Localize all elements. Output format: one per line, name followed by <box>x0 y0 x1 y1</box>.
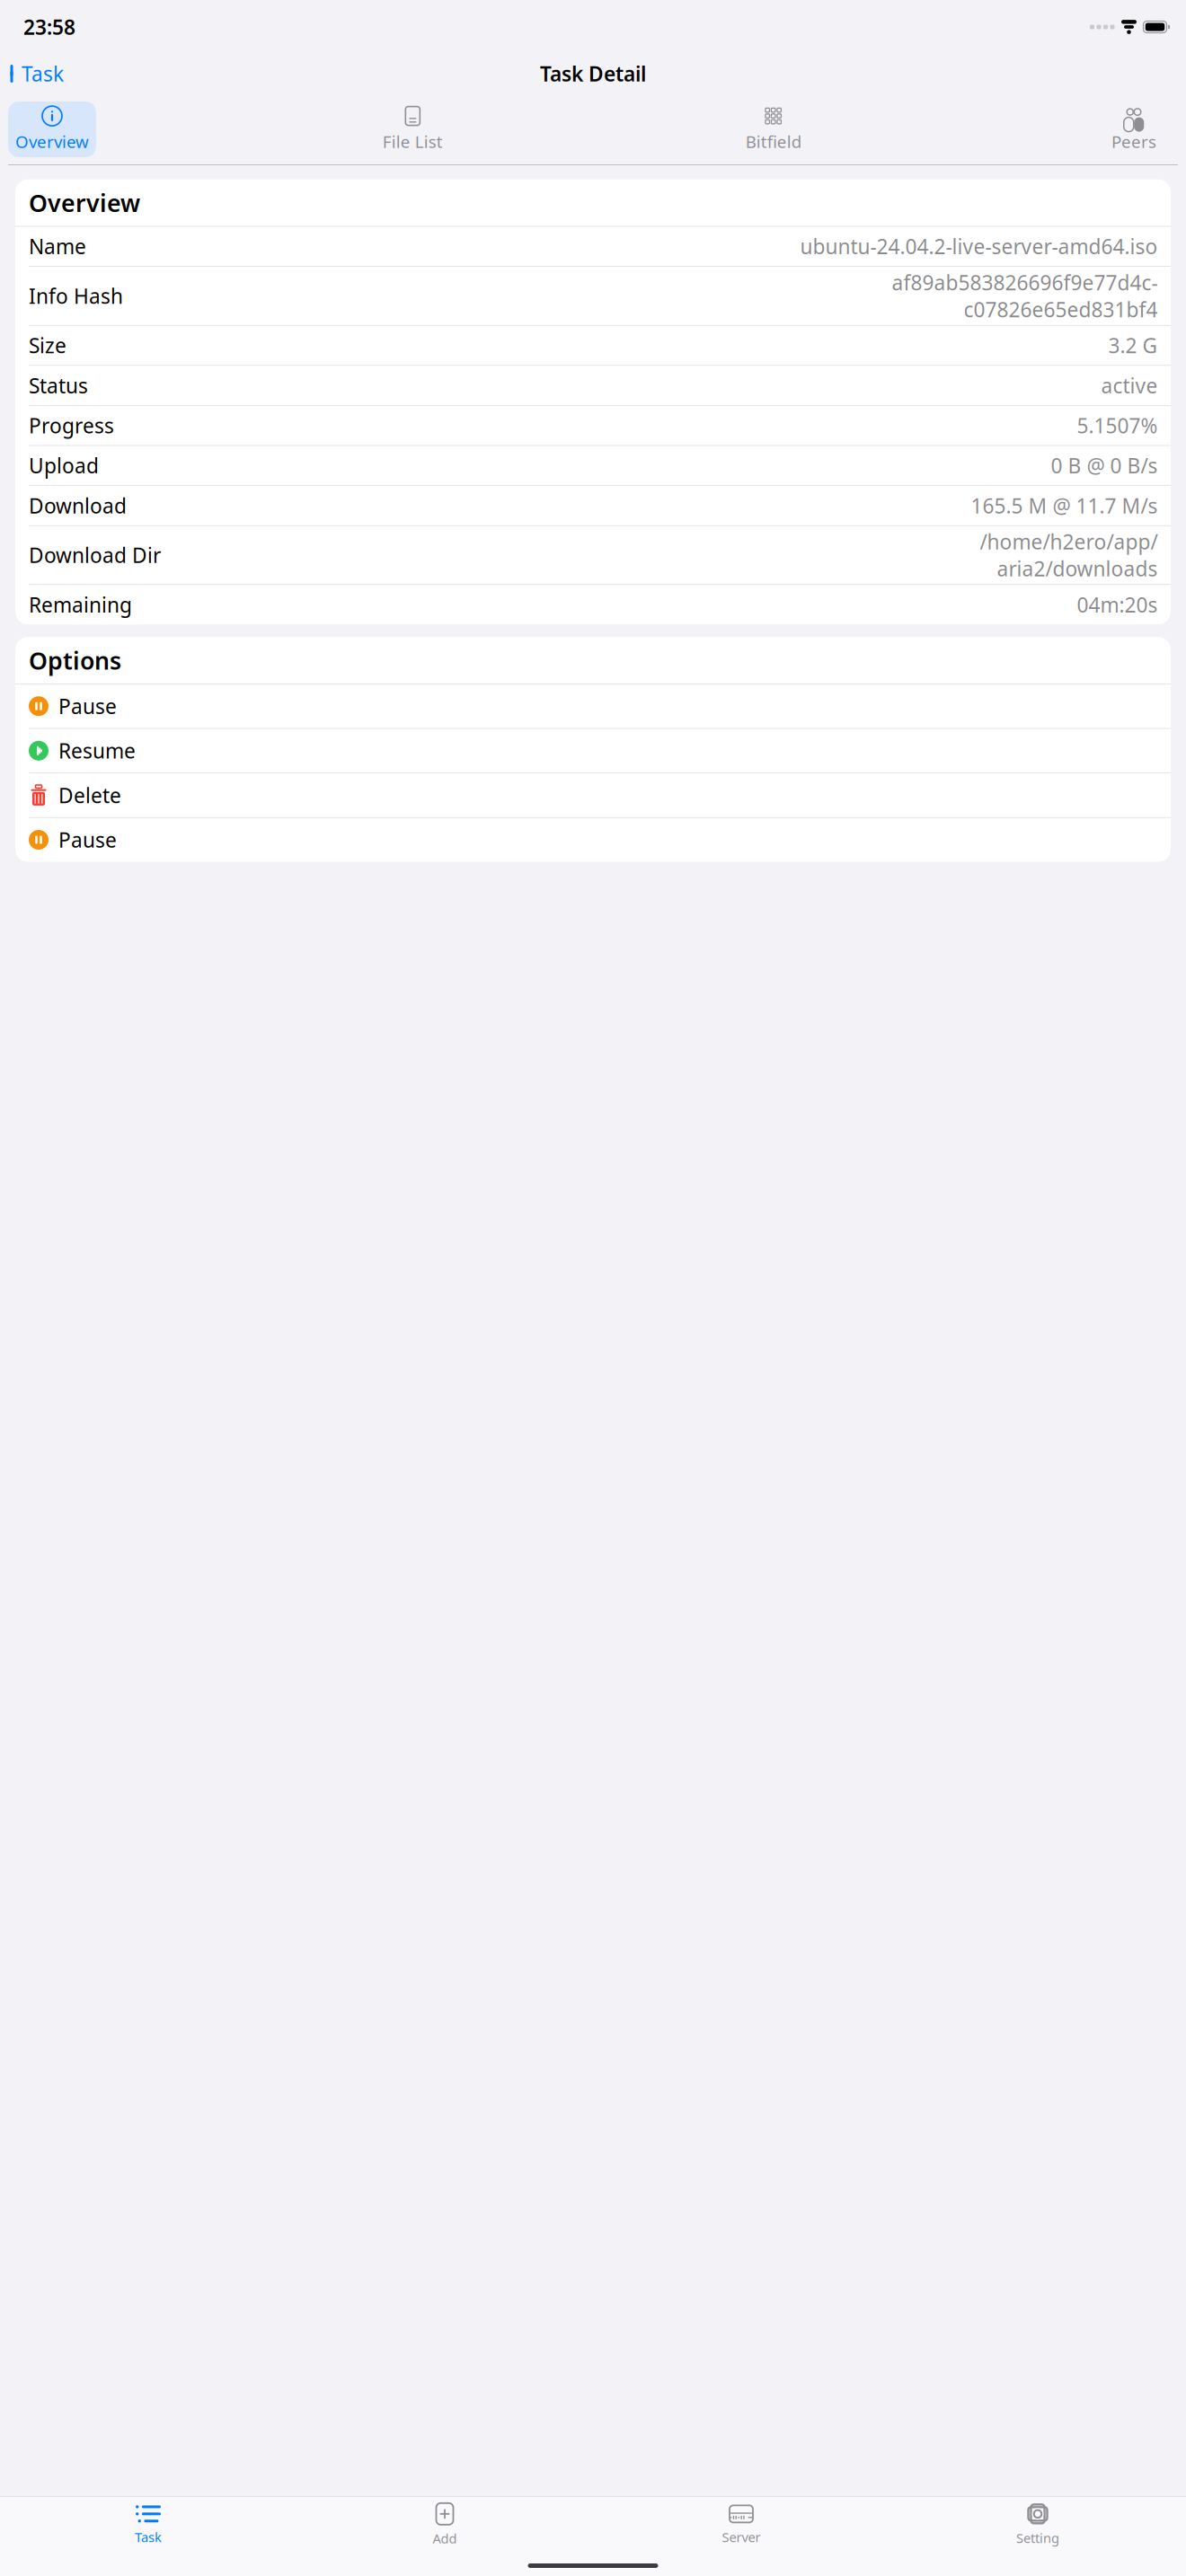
staticText: Setting <box>1016 2529 1059 2547</box>
button[interactable]: Setting <box>889 2503 1186 2547</box>
staticText: Progress <box>29 412 114 439</box>
button[interactable]: Pause <box>15 684 1171 728</box>
staticText: active <box>1101 372 1157 399</box>
staticText: 3.2 G <box>1108 332 1157 359</box>
staticText: File List <box>383 130 443 153</box>
button[interactable]: Overview <box>8 101 96 157</box>
staticText: Status <box>29 372 88 399</box>
staticText: Task <box>135 2528 162 2546</box>
staticText: ubuntu-24.04.2-live-server-amd64.iso <box>800 233 1157 260</box>
staticText: Overview <box>15 130 89 153</box>
staticText: Server <box>722 2528 761 2546</box>
staticText: Size <box>29 332 66 359</box>
staticText: 0 B @ 0 B/s <box>1050 452 1157 479</box>
staticText: Name <box>29 233 86 260</box>
staticText: Resume <box>58 737 136 764</box>
staticText: Overview <box>29 187 140 219</box>
staticText: 165.5 M @ 11.7 M/s <box>970 492 1157 519</box>
button[interactable]: Resume <box>15 729 1171 773</box>
staticText: Options <box>29 644 121 676</box>
staticText: Add <box>433 2530 457 2547</box>
button[interactable]: Server <box>593 2503 889 2547</box>
staticText: Task Detail <box>540 60 646 87</box>
staticText: af89ab583826696f9e77d4c- c07826e65ed831b… <box>891 269 1157 323</box>
staticText: Delete <box>58 782 121 809</box>
button[interactable]: File List <box>369 101 457 157</box>
button[interactable]: Add <box>296 2503 593 2547</box>
staticText: Download Dir <box>29 542 161 569</box>
button[interactable]: Bitfield <box>729 101 817 157</box>
button[interactable]: Pause <box>15 818 1171 862</box>
staticText: Pause <box>58 826 117 853</box>
staticText: /home/h2ero/app/ aria2/downloads <box>979 528 1157 582</box>
staticText: 23:58 <box>23 13 75 40</box>
staticText: 5.1507% <box>1076 412 1157 439</box>
staticText: Info Hash <box>29 282 123 309</box>
button[interactable]: Task <box>0 2503 296 2547</box>
staticText: Pause <box>58 693 117 720</box>
staticText: Download <box>29 492 127 519</box>
button[interactable]: Task <box>0 55 64 93</box>
button[interactable]: Peers <box>1090 101 1178 157</box>
staticText: Task <box>22 60 64 87</box>
staticText: Upload <box>29 452 99 479</box>
staticText: Peers <box>1111 130 1156 153</box>
button[interactable]: Delete <box>15 773 1171 817</box>
staticText: 04m:20s <box>1076 591 1157 618</box>
staticText: Remaining <box>29 591 132 618</box>
staticText: Bitfield <box>745 130 801 153</box>
